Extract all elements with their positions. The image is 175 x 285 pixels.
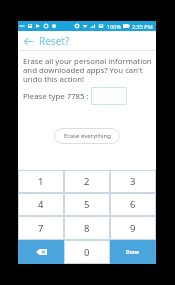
button[interactable]: 0 [64, 240, 110, 264]
button[interactable]: 9 [110, 216, 156, 240]
button[interactable]: 2 [64, 170, 110, 193]
staticText: 0 [84, 246, 90, 259]
button[interactable]: Done [110, 240, 156, 264]
staticText: Erase everything [64, 132, 111, 140]
button[interactable]: 3 [110, 170, 156, 193]
staticText: 9 [130, 222, 136, 235]
staticText: Done [126, 249, 140, 256]
staticText: 2:35 PM [132, 23, 153, 30]
staticText: Please type 7785 : [23, 91, 89, 102]
staticText: 4 [38, 198, 44, 211]
staticText: 8 [84, 222, 90, 235]
button[interactable]: Erase everything [54, 128, 120, 144]
staticText: 1 [38, 175, 44, 188]
staticText: 3 [130, 175, 136, 188]
button[interactable]: Backspace [18, 240, 64, 264]
staticText: 100% [107, 23, 122, 30]
staticText: 6 [130, 198, 136, 211]
staticText: Reset? [39, 34, 70, 48]
button[interactable]: 7 [18, 216, 64, 240]
staticText: 7 [38, 222, 44, 235]
button[interactable]: 6 [110, 193, 156, 216]
button[interactable]: 1 [18, 170, 64, 193]
button[interactable]: 4 [18, 193, 64, 216]
staticText: 5 [84, 198, 90, 211]
button[interactable]: 8 [64, 216, 110, 240]
staticText: Erase all your personal information and … [23, 56, 153, 85]
staticText: 2 [84, 175, 90, 188]
button[interactable]: 5 [64, 193, 110, 216]
button[interactable]: Back [22, 35, 34, 47]
